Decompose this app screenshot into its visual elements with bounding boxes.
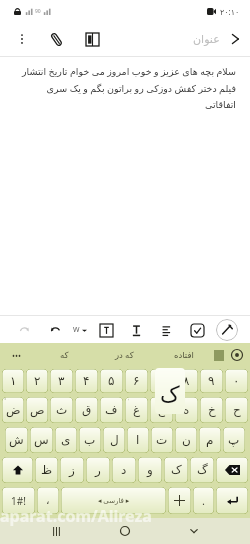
button[interactable]: ب <box>79 427 101 453</box>
button[interactable]: غ <box>125 397 148 423</box>
button[interactable]: ی <box>55 427 77 453</box>
button[interactable]: Back <box>181 518 207 544</box>
staticText: ••• <box>12 350 22 361</box>
button[interactable]: ق <box>75 397 98 423</box>
button[interactable]: ن <box>175 427 197 453</box>
staticText: د <box>121 463 127 477</box>
button[interactable]: م <box>199 427 221 453</box>
staticText: ت <box>156 433 168 447</box>
button[interactable]: ۲ <box>26 369 48 393</box>
button[interactable]: ۶ <box>125 369 148 393</box>
button[interactable]: ۰ <box>225 369 248 393</box>
button[interactable]: که <box>34 343 94 367</box>
button[interactable]: ۷ <box>150 369 173 393</box>
staticText: که <box>60 350 69 360</box>
staticText: ا <box>136 433 140 447</box>
button[interactable]: گ <box>190 457 214 483</box>
staticText: پ <box>228 433 240 447</box>
staticText: ز <box>69 463 75 477</box>
button[interactable]: که در <box>94 343 154 367</box>
staticText: ◂ فارسی ▸ <box>98 496 130 506</box>
button[interactable]: ع <box>150 397 173 423</box>
button[interactable]: Backspace <box>216 457 248 483</box>
staticText: ه <box>183 403 190 417</box>
button[interactable]: ظ <box>35 457 58 483</box>
button[interactable]: Undo <box>43 318 67 342</box>
button[interactable]: ف <box>100 397 123 423</box>
button[interactable]: ا <box>127 427 149 453</box>
button[interactable]: و <box>138 457 162 483</box>
button[interactable]: Split view <box>80 27 104 51</box>
button[interactable]: ، <box>37 487 59 514</box>
button[interactable]: س <box>30 427 53 453</box>
staticText: 1#! <box>11 494 26 508</box>
button[interactable]: 1#! <box>2 487 35 514</box>
button[interactable]: Checklist <box>185 318 209 342</box>
button[interactable]: Voice input <box>224 343 250 367</box>
staticText: ۴ <box>83 374 90 388</box>
button[interactable]: Text box <box>94 318 118 342</box>
button[interactable]: ۵ <box>100 369 123 393</box>
button[interactable]: افتاده <box>154 343 214 367</box>
button[interactable]: ث <box>50 397 73 423</box>
staticText: ش <box>9 433 24 447</box>
button[interactable]: ر <box>86 457 110 483</box>
staticText: خ <box>208 403 216 417</box>
staticText: 90 <box>35 8 41 15</box>
button[interactable]: ۸ <box>175 369 198 393</box>
button[interactable]: ص <box>26 397 48 423</box>
button[interactable]: ک <box>164 457 188 483</box>
button[interactable]: Attach <box>44 27 68 51</box>
staticText: ن <box>182 433 191 447</box>
staticText: ل <box>110 433 119 447</box>
button[interactable]: Paragraph <box>155 318 179 342</box>
staticText: ف <box>105 403 118 417</box>
staticText: عنوان <box>193 33 220 46</box>
staticText: ۲۰:۱۰ <box>220 6 240 17</box>
button[interactable]: ۳ <box>50 369 73 393</box>
button[interactable]: Font <box>73 318 87 342</box>
staticText: ۲ <box>34 374 41 388</box>
button[interactable]: د <box>112 457 136 483</box>
staticText: ۱ <box>10 374 17 388</box>
staticText: . <box>202 493 205 508</box>
button[interactable]: عنوان <box>193 32 242 46</box>
button[interactable]: خ <box>200 397 223 423</box>
button[interactable]: Shift <box>2 457 33 483</box>
staticText: ب <box>84 433 96 447</box>
staticText: سلام بچه های عزیز و خوب امروز می خوام تا… <box>16 65 236 110</box>
staticText: گ <box>197 463 208 477</box>
button[interactable]: Home <box>112 518 138 544</box>
button[interactable]: ت <box>151 427 173 453</box>
button[interactable]: Text format <box>124 318 148 342</box>
staticText: ک <box>171 463 182 477</box>
staticText: ۸ <box>183 374 190 388</box>
button[interactable]: ۱ <box>2 369 24 393</box>
staticText: که در <box>115 349 134 361</box>
button[interactable]: ۹ <box>200 369 223 393</box>
button[interactable]: Recents <box>43 518 69 544</box>
staticText: ک <box>160 382 180 408</box>
button[interactable]: ز <box>60 457 84 483</box>
button[interactable]: پ <box>223 427 245 453</box>
button[interactable]: . <box>193 487 214 514</box>
button[interactable]: ل <box>103 427 125 453</box>
button[interactable]: Arrows <box>168 487 191 514</box>
staticText: ۹ <box>208 374 215 388</box>
button[interactable]: Enter <box>216 487 248 514</box>
button[interactable]: More suggestions <box>0 343 34 367</box>
staticText: ق <box>82 403 92 417</box>
button[interactable]: فارسی <box>61 487 166 514</box>
button[interactable]: ه <box>175 397 198 423</box>
button[interactable]: Redo <box>12 318 36 342</box>
staticText: ۶ <box>133 374 140 388</box>
button[interactable]: ض <box>2 397 24 423</box>
button[interactable]: Draw <box>216 319 238 341</box>
staticText: ۵ <box>108 374 115 388</box>
button[interactable]: ح <box>225 397 248 423</box>
button[interactable]: More options <box>10 27 34 51</box>
button[interactable]: ۴ <box>75 369 98 393</box>
button[interactable]: ش <box>5 427 28 453</box>
staticText: ح <box>233 403 241 417</box>
